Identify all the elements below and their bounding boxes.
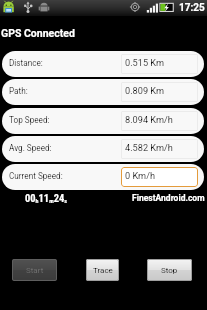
staticText: 00h11m24s — [25, 192, 67, 204]
button[interactable]: Start — [12, 259, 57, 281]
staticText: Path: — [9, 86, 28, 96]
staticText: 0.809 Km — [125, 85, 165, 96]
button[interactable]: Avg. Speed: — [2, 136, 204, 162]
staticText: 8.094 Km/h — [125, 114, 173, 125]
staticText: Avg. Speed: — [9, 143, 52, 153]
staticText: Stop — [161, 266, 178, 275]
staticText: Top Speed: — [9, 115, 50, 125]
staticText: 17:25 — [179, 2, 205, 14]
staticText: GPS Connected — [1, 27, 75, 39]
staticText: Trace — [93, 266, 113, 275]
staticText: Start — [26, 266, 44, 275]
button[interactable]: Trace — [86, 259, 119, 281]
staticText: 0 Km/h — [125, 170, 156, 181]
staticText: 4.582 Km/h — [125, 142, 173, 153]
button[interactable]: Distance: — [2, 51, 204, 77]
button[interactable]: Current Speed: — [2, 164, 204, 190]
staticText: 0.515 Km — [125, 57, 165, 68]
staticText: Current Speed: — [9, 171, 63, 181]
staticText: Distance: — [9, 58, 43, 68]
staticText: FinestAndroid.com — [132, 193, 205, 203]
button[interactable]: Path: — [2, 79, 204, 105]
button[interactable]: Stop — [147, 259, 192, 281]
button[interactable]: Top Speed: — [2, 108, 204, 134]
